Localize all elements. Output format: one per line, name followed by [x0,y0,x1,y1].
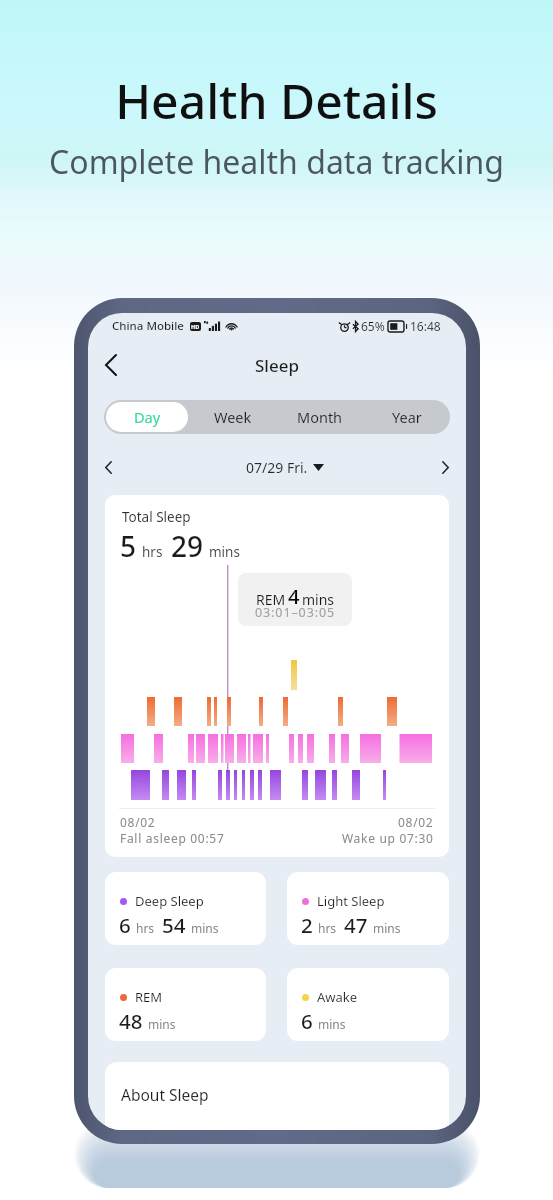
staticText: Deep Sleep [135,892,204,910]
staticText: 65% [361,318,385,334]
staticText: mins [191,920,219,936]
staticText: Fall asleep 00:57 [120,830,225,846]
staticText: mins [209,543,240,561]
button[interactable]: Previous day [94,453,122,481]
button[interactable]: Year [365,402,448,432]
staticText: 08/02 [120,814,156,830]
staticText: mins [373,920,401,936]
button[interactable]: Next day [431,453,459,481]
staticText: 07/29 Fri. [246,458,308,477]
staticText: 03:01–03:05 [255,604,336,621]
staticText: REM [256,590,286,609]
staticText: 54 [162,911,186,939]
staticText: 2 [301,911,313,939]
staticText: Sleep [255,354,299,377]
staticText: hrs [318,920,337,936]
staticText: mins [148,1016,176,1032]
staticText: 16:48 [410,318,441,334]
staticText: Total Sleep [122,508,191,526]
staticText: 5 [120,527,137,565]
staticText: Wake up 07:30 [342,830,434,846]
staticText: Year [392,407,422,427]
staticText: Week [214,407,252,427]
button[interactable]: REM [105,968,266,1041]
staticText: Awake [317,988,358,1006]
button[interactable]: Awake [287,968,449,1041]
button[interactable]: Month [278,402,361,432]
button[interactable]: Week [192,402,274,432]
staticText: HD [191,323,200,330]
staticText: 08/02 [398,814,434,830]
staticText: Complete health data tracking [0,140,553,184]
staticText: REM [135,988,163,1006]
staticText: Light Sleep [317,892,385,910]
button[interactable]: Back [93,348,127,382]
staticText: About Sleep [121,1084,209,1105]
staticText: hrs [142,543,163,561]
staticText: 6 [301,1007,313,1035]
staticText: mins [318,1016,346,1032]
button[interactable]: 07/29 Fri. [246,455,308,480]
staticText: hrs [136,920,155,936]
staticText: 29 [171,527,204,565]
button[interactable]: About Sleep [105,1062,449,1130]
staticText: mins [302,590,335,609]
button[interactable]: Day [106,402,188,432]
staticText: China Mobile [112,318,184,334]
staticText: 4 [288,583,300,610]
button[interactable]: Light Sleep [287,872,449,945]
staticText: Month [297,407,343,427]
button[interactable]: Deep Sleep [105,872,266,945]
staticText: Health Details [0,68,553,133]
staticText: 48 [119,1007,143,1035]
staticText: 6 [119,911,131,939]
staticText: Day [134,407,161,427]
staticText: 47 [344,911,368,939]
